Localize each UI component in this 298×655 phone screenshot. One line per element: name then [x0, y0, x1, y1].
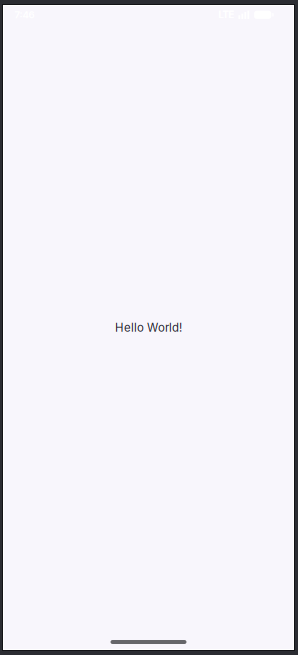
- staticText: LTE: [218, 9, 234, 21]
- staticText: Hello World!: [115, 321, 182, 334]
